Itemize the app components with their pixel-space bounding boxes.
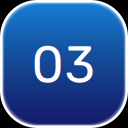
staticText: 03 [31,35,94,95]
button[interactable]: 03 [0,0,128,128]
